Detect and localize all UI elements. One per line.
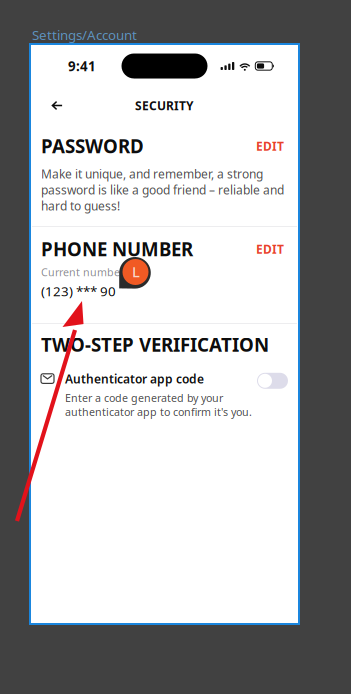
button[interactable]: EDIT	[254, 239, 284, 259]
staticText: Make it unique, and remember, a strong p…	[41, 166, 284, 214]
staticText: 9:41	[68, 57, 96, 75]
staticText: Current number	[41, 265, 124, 279]
staticText: Enter a code generated by your authentic…	[65, 391, 252, 419]
staticText: SECURITY	[135, 97, 194, 113]
staticText: TWO-STEP VERIFICATION	[41, 332, 269, 357]
staticText: EDIT	[256, 138, 284, 154]
button[interactable]: Back	[44, 92, 70, 118]
staticText: (123) *** 90	[41, 282, 116, 300]
staticText: Authenticator app code	[65, 371, 204, 387]
staticText: Settings/Account	[32, 26, 137, 44]
staticText: L	[132, 262, 140, 281]
button[interactable]: Authenticator app code	[257, 373, 288, 389]
button[interactable]: EDIT	[254, 136, 284, 156]
staticText: PHONE NUMBER	[41, 237, 193, 261]
staticText: PASSWORD	[41, 134, 144, 158]
staticText: EDIT	[256, 241, 284, 257]
